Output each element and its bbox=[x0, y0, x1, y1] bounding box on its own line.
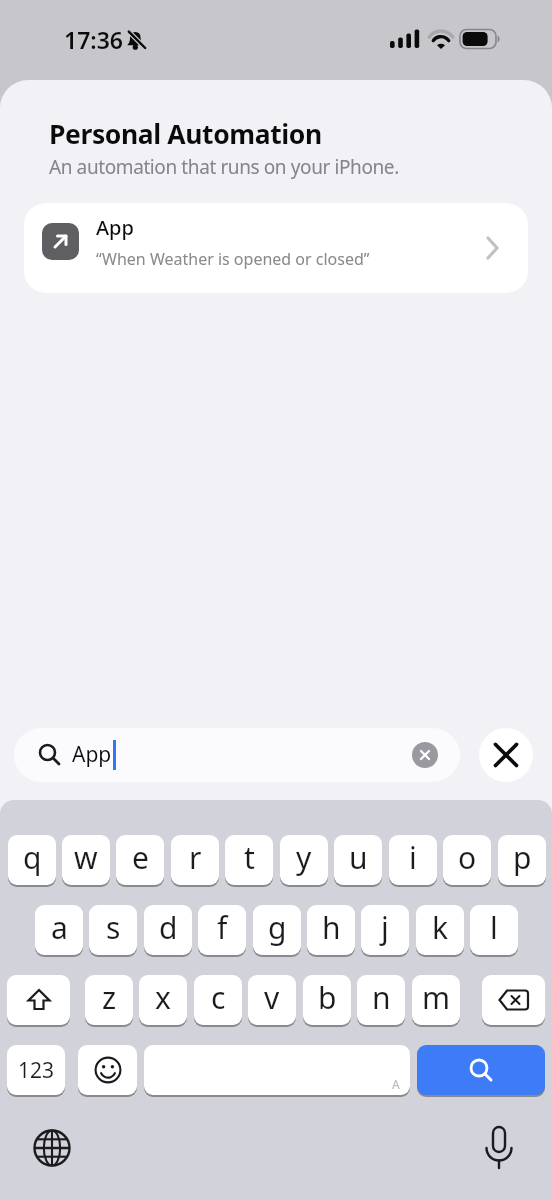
staticText: c bbox=[211, 977, 226, 1018]
staticText: f bbox=[217, 907, 228, 948]
staticText: k bbox=[432, 907, 449, 948]
button[interactable]: k bbox=[416, 905, 464, 955]
staticText: h bbox=[322, 907, 341, 948]
staticText: x bbox=[155, 977, 171, 1018]
staticText: “When Weather is opened or closed” bbox=[96, 248, 370, 270]
button[interactable]: App bbox=[24, 203, 528, 293]
button[interactable]: t bbox=[225, 835, 273, 885]
staticText: o bbox=[458, 837, 477, 878]
button[interactable]: q bbox=[8, 835, 56, 885]
staticText: a bbox=[51, 907, 68, 948]
staticText: App bbox=[72, 740, 112, 769]
staticText: t bbox=[244, 837, 255, 878]
staticText: n bbox=[372, 977, 391, 1018]
staticText: l bbox=[490, 907, 498, 948]
button[interactable]: s bbox=[89, 905, 137, 955]
staticText: q bbox=[23, 837, 42, 878]
staticText: 123 bbox=[18, 1056, 55, 1085]
staticText: e bbox=[132, 837, 149, 878]
button[interactable]: A bbox=[144, 1045, 410, 1095]
staticText: p bbox=[513, 837, 532, 878]
staticText: w bbox=[74, 837, 98, 878]
button[interactable]: w bbox=[62, 835, 110, 885]
staticText: s bbox=[106, 907, 121, 948]
staticText: m bbox=[422, 977, 451, 1018]
button[interactable]: m bbox=[412, 975, 460, 1025]
staticText: An automation that runs on your iPhone. bbox=[49, 154, 399, 180]
staticText: y bbox=[296, 837, 312, 878]
staticText: A bbox=[392, 1076, 400, 1092]
button[interactable] bbox=[78, 1045, 137, 1095]
button[interactable] bbox=[412, 742, 438, 768]
staticText: Personal Automation bbox=[49, 116, 322, 152]
button[interactable]: e bbox=[116, 835, 164, 885]
button[interactable]: x bbox=[139, 975, 187, 1025]
button[interactable]: i bbox=[389, 835, 437, 885]
button[interactable]: f bbox=[198, 905, 246, 955]
button[interactable] bbox=[7, 975, 70, 1025]
button[interactable]: n bbox=[357, 975, 405, 1025]
staticText: App bbox=[96, 214, 134, 241]
button[interactable]: v bbox=[248, 975, 296, 1025]
button[interactable] bbox=[479, 728, 533, 782]
button[interactable]: h bbox=[307, 905, 355, 955]
button[interactable]: g bbox=[253, 905, 301, 955]
button[interactable] bbox=[482, 975, 545, 1025]
button[interactable]: y bbox=[280, 835, 328, 885]
staticText: j bbox=[381, 907, 389, 948]
staticText: v bbox=[264, 977, 280, 1018]
staticText: d bbox=[159, 907, 178, 948]
staticText: i bbox=[409, 837, 417, 878]
staticText: b bbox=[318, 977, 337, 1018]
button[interactable]: j bbox=[361, 905, 409, 955]
button[interactable]: a bbox=[35, 905, 83, 955]
button[interactable]: o bbox=[443, 835, 491, 885]
button[interactable]: 123 bbox=[7, 1045, 65, 1095]
staticText: z bbox=[102, 977, 117, 1018]
staticText: r bbox=[189, 837, 202, 878]
button[interactable]: c bbox=[194, 975, 242, 1025]
button[interactable]: u bbox=[334, 835, 382, 885]
staticText: 17:36 bbox=[64, 24, 123, 55]
button[interactable]: App bbox=[14, 728, 460, 782]
staticText: g bbox=[268, 907, 287, 948]
button[interactable]: l bbox=[470, 905, 518, 955]
button[interactable]: d bbox=[144, 905, 192, 955]
button[interactable] bbox=[482, 1125, 516, 1173]
staticText: u bbox=[349, 837, 368, 878]
button[interactable]: b bbox=[303, 975, 351, 1025]
button[interactable]: p bbox=[498, 835, 546, 885]
button[interactable]: r bbox=[171, 835, 219, 885]
button[interactable]: z bbox=[85, 975, 133, 1025]
button[interactable] bbox=[417, 1045, 545, 1095]
button[interactable] bbox=[33, 1129, 71, 1167]
